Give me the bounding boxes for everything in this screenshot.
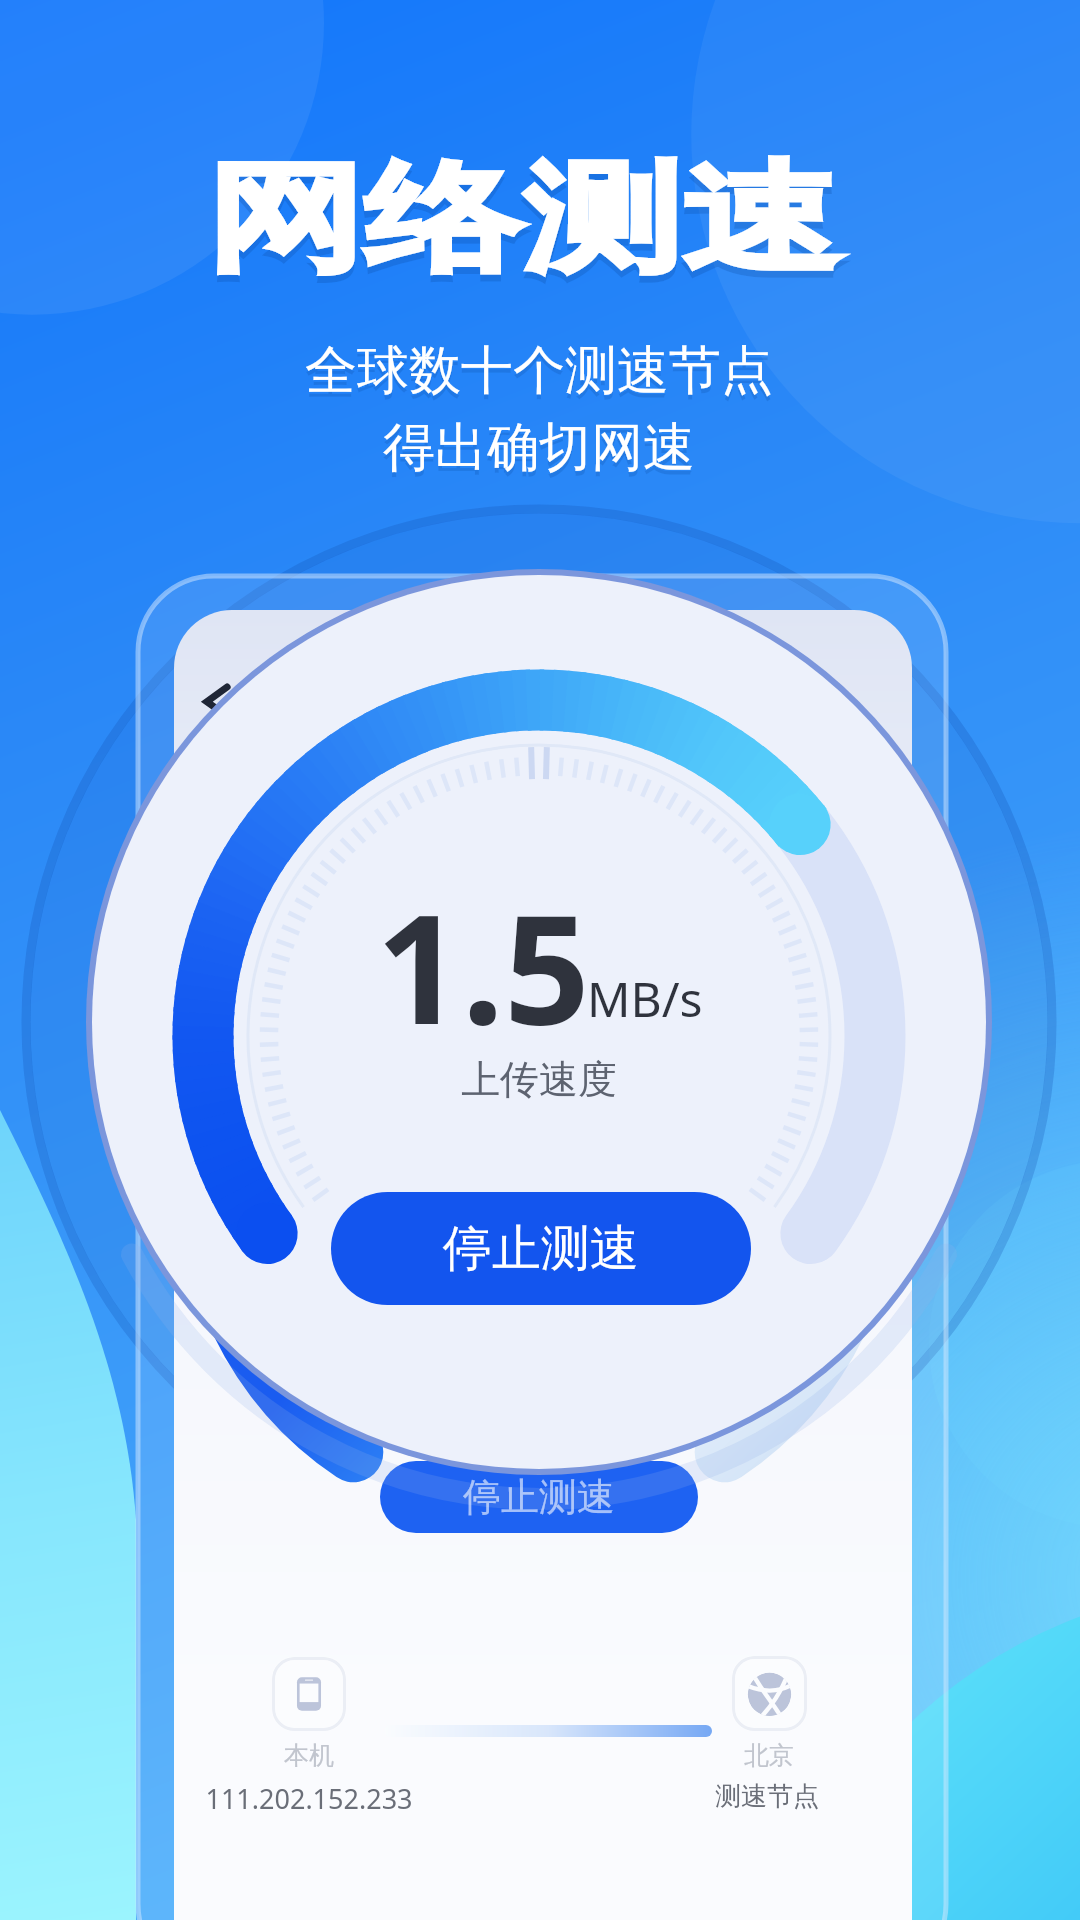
staticText: 111.202.152.233 — [0, 1780, 669, 1817]
button[interactable]: 停止测速 — [331, 1192, 751, 1305]
button[interactable]: 停止测速 — [380, 1461, 698, 1533]
staticText: 停止测速 — [463, 1473, 615, 1521]
staticText: 网络测速 — [206, 152, 840, 301]
staticText: 停止测速 — [443, 1218, 639, 1280]
staticText: 网络测速 — [206, 145, 840, 294]
staticText: 本机 — [0, 1740, 669, 1771]
staticText: 全球数十个测速节点 — [179, 343, 899, 409]
staticText: 得出确切网速 — [179, 415, 899, 481]
button[interactable]: 本机 — [272, 1657, 346, 1731]
staticText: MB/s — [587, 966, 703, 1031]
staticText: 全球数十个测速节点 — [179, 338, 899, 404]
staticText: 1.5 — [376, 864, 590, 1068]
button[interactable]: 测速节点 — [732, 1656, 807, 1731]
staticText: 得出确切网速 — [179, 420, 899, 486]
staticText: 测速节点 — [407, 1780, 1080, 1813]
button[interactable]: Back — [194, 676, 240, 722]
staticText: 北京 — [409, 1740, 1080, 1771]
staticText: 上传速度 — [179, 1055, 899, 1104]
